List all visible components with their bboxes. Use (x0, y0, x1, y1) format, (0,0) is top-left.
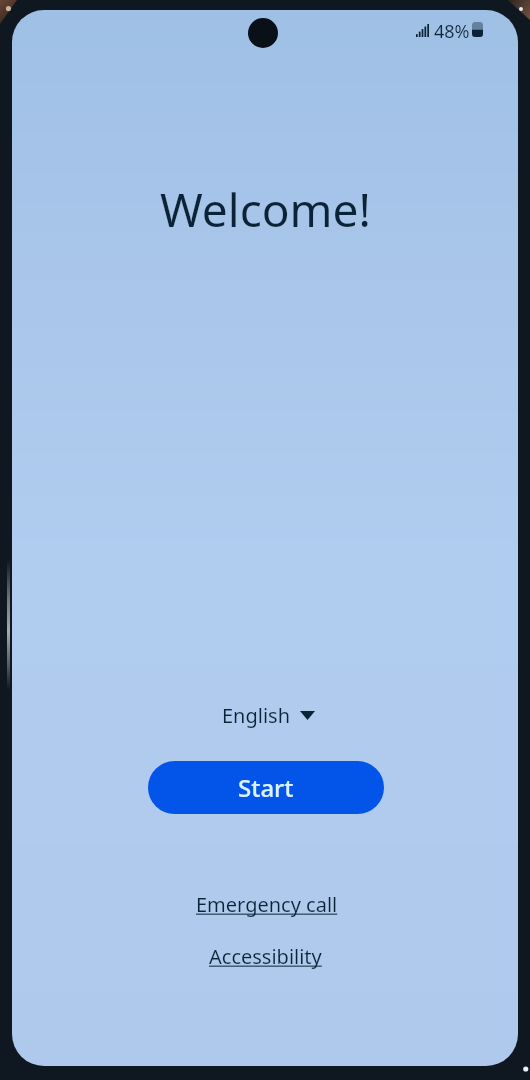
button[interactable]: Emergency call (184, 883, 350, 926)
other: Battery 48 percent (472, 22, 483, 37)
button[interactable]: Start (148, 761, 384, 814)
staticText: Emergency call (196, 891, 338, 918)
staticText: Accessibility (209, 943, 322, 970)
staticText: Welcome! (160, 178, 371, 241)
other: Mobile signal strength (416, 24, 429, 37)
button[interactable]: Accessibility (197, 935, 334, 978)
staticText: 48% (434, 19, 470, 44)
button[interactable]: English (212, 696, 325, 735)
staticText: Start (238, 771, 294, 804)
staticText: English (222, 702, 291, 729)
